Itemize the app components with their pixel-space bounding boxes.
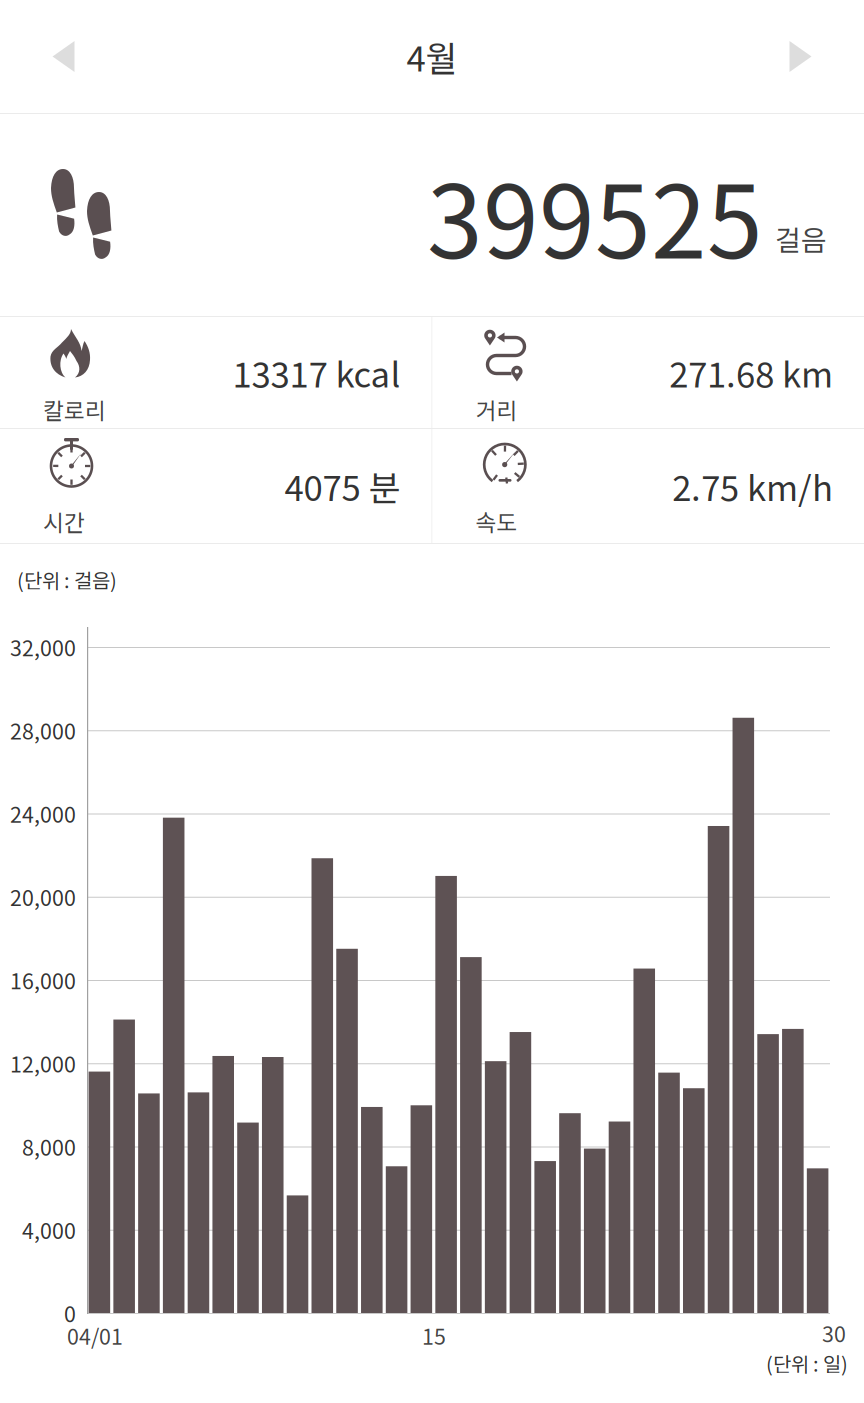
staticText: 30 bbox=[822, 1318, 846, 1348]
staticText: 속도 bbox=[475, 505, 517, 538]
staticText: 8,000 bbox=[22, 1131, 76, 1162]
staticText: 399525 bbox=[427, 143, 763, 287]
staticText: 12,000 bbox=[10, 1048, 76, 1079]
staticText: 4,000 bbox=[22, 1214, 76, 1245]
staticText: (단위 : 일) bbox=[766, 1348, 848, 1377]
staticText: (단위 : 걸음) bbox=[17, 565, 117, 594]
button[interactable]: 시간 bbox=[0, 429, 431, 543]
staticText: 2.75 km/h bbox=[672, 461, 833, 511]
staticText: 15 bbox=[422, 1320, 446, 1351]
staticText: 28,000 bbox=[10, 715, 76, 746]
staticText: 4월 bbox=[406, 31, 457, 82]
staticText: 32,000 bbox=[10, 632, 76, 662]
button[interactable]: Previous month bbox=[0, 0, 127, 113]
staticText: 04/01 bbox=[67, 1320, 123, 1351]
button[interactable]: Next month bbox=[737, 0, 864, 113]
staticText: 16,000 bbox=[10, 965, 76, 995]
button[interactable]: 속도 bbox=[432, 429, 864, 543]
staticText: 4075 분 bbox=[284, 461, 400, 511]
staticText: 거리 bbox=[475, 393, 517, 426]
staticText: 13317 kcal bbox=[232, 347, 400, 398]
button[interactable]: 칼로리 bbox=[0, 317, 431, 428]
staticText: 271.68 km bbox=[669, 347, 833, 398]
staticText: 20,000 bbox=[10, 881, 76, 912]
staticText: 칼로리 bbox=[43, 393, 106, 426]
staticText: 0 bbox=[64, 1298, 76, 1328]
staticText: 걸음 bbox=[775, 218, 827, 259]
staticText: 24,000 bbox=[10, 798, 76, 829]
button[interactable]: 거리 bbox=[432, 317, 864, 428]
staticText: 시간 bbox=[43, 505, 85, 538]
